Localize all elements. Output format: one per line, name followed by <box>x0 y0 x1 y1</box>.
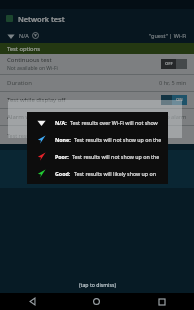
staticText: Network test <box>18 14 65 24</box>
button[interactable]: Alarm when complete <box>0 109 194 125</box>
staticText: "guest" | Wi-Fi <box>149 32 187 39</box>
staticText: Continuous test <box>7 56 52 64</box>
staticText: Poor: <box>55 153 69 160</box>
staticText: Test results will not show up on the map <box>74 136 162 143</box>
staticText: Start test <box>83 158 112 167</box>
button[interactable]: ON <box>161 95 187 105</box>
staticText: N/A <box>19 32 29 39</box>
button[interactable]: Back <box>0 293 64 310</box>
staticText: No alarm <box>162 113 187 121</box>
staticText: Not available on Wi-Fi <box>7 65 58 72</box>
button[interactable]: Continuous test <box>0 54 194 74</box>
staticText: 0 hr, 5 min <box>159 79 187 87</box>
staticText: N/A: <box>55 119 67 126</box>
staticText: Good: <box>55 170 71 177</box>
staticText: Test results will not show up on the map <box>72 153 162 160</box>
staticText: (tap to dismiss) <box>79 281 116 288</box>
staticText: Test while display off <box>7 96 161 104</box>
staticText: Test result quality shows up on the map <box>7 132 108 139</box>
staticText: ON <box>176 97 183 103</box>
staticText: OFF <box>165 61 173 67</box>
button[interactable]: Test while display off <box>0 92 194 108</box>
button[interactable]: (tap to dismiss) <box>0 281 194 288</box>
staticText: Testing may consume a large amount of yo… <box>41 174 162 180</box>
staticText: Alarm when complete <box>7 113 162 121</box>
button[interactable]: Good: <box>27 165 168 182</box>
staticText: None: <box>55 136 71 143</box>
button[interactable]: Poor: <box>27 148 168 165</box>
button[interactable]: N/A: <box>27 114 168 131</box>
button[interactable]: Home <box>64 293 129 310</box>
staticText: Duration <box>7 79 159 87</box>
button[interactable]: Network test <box>0 9 194 28</box>
staticText: Test results will likely show up on the … <box>74 170 162 177</box>
button[interactable]: Duration <box>0 75 194 91</box>
button[interactable]: None: <box>27 131 168 148</box>
button[interactable]: Test result quality shows up on the map <box>0 126 194 144</box>
staticText: Test results over Wi-Fi will not show up… <box>70 119 162 126</box>
button[interactable]: OFF <box>161 59 187 69</box>
staticText: Test options <box>7 45 40 53</box>
button[interactable]: Recents <box>129 293 194 310</box>
